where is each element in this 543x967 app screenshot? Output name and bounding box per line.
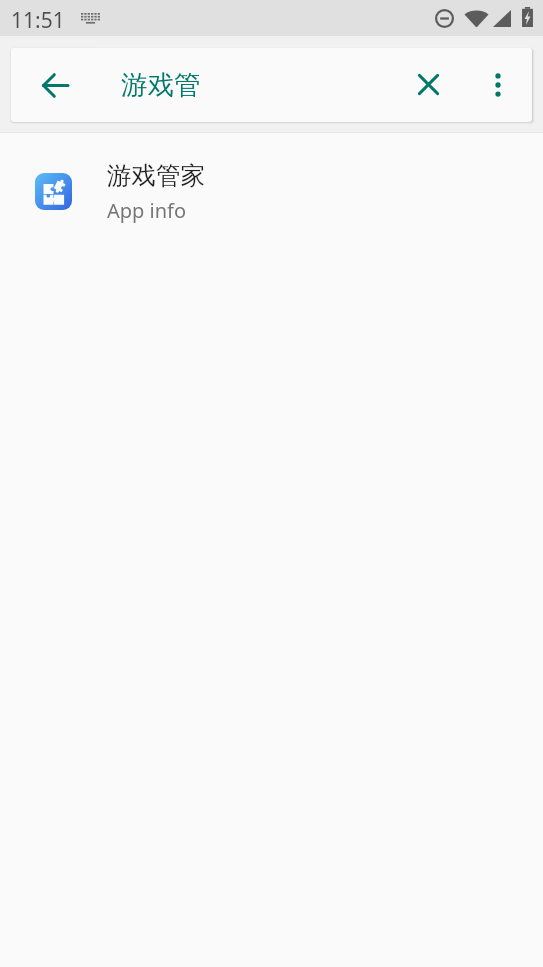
button[interactable]: Navigate up (27, 56, 84, 115)
button[interactable]: 游戏管家 (0, 134, 543, 229)
button[interactable]: Clear query (400, 56, 457, 113)
staticText: 游戏管 (121, 68, 201, 101)
staticText: 游戏管家 (107, 160, 205, 191)
staticText: 11:51 (11, 6, 65, 35)
button[interactable]: More options (469, 56, 526, 113)
staticText: App info (107, 197, 187, 224)
